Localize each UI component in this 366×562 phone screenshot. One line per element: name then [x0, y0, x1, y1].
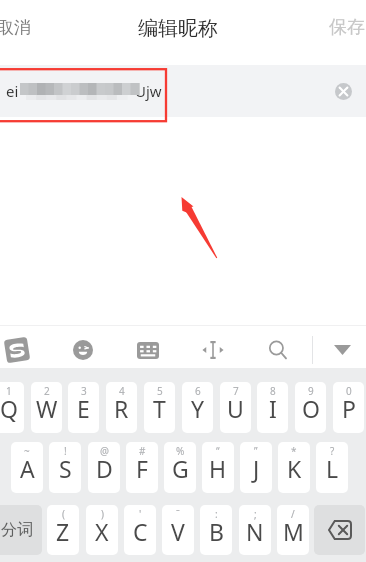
button[interactable]: 保存 — [317, 9, 366, 46]
button[interactable]: 6 — [182, 382, 213, 433]
button[interactable]: 键盘 — [131, 333, 165, 367]
staticText: ˉ — [176, 507, 180, 521]
button[interactable]: 0 — [333, 382, 364, 433]
button[interactable]: 收起键盘 — [325, 333, 359, 367]
staticText: 保存 — [329, 16, 365, 39]
button[interactable]: ' — [124, 505, 156, 555]
staticText: “ — [216, 444, 220, 458]
staticText: V — [171, 516, 185, 547]
staticText: ei — [6, 81, 19, 101]
staticText: K — [287, 453, 302, 484]
staticText: 4 — [119, 384, 125, 398]
staticText: C — [133, 516, 148, 547]
button[interactable]: “ — [202, 442, 234, 493]
staticText: ! — [64, 444, 67, 458]
staticText: D — [96, 453, 113, 484]
button[interactable]: 表情 — [66, 333, 100, 367]
staticText: H — [209, 453, 227, 484]
button[interactable]: 4 — [106, 382, 137, 433]
staticText: U — [227, 393, 244, 424]
button[interactable]: # — [126, 442, 158, 493]
button[interactable]: 分词 — [0, 505, 42, 555]
staticText: Y — [191, 393, 205, 424]
staticText: N — [246, 516, 264, 547]
button[interactable]: 清除 — [327, 75, 359, 107]
staticText: L — [326, 453, 339, 484]
button[interactable]: 搜狗输入法 — [0, 333, 34, 367]
staticText: * — [291, 444, 297, 458]
staticText: S — [59, 453, 72, 484]
staticText: ' — [139, 507, 142, 521]
button[interactable]: * — [278, 442, 310, 493]
button[interactable]: 9 — [295, 382, 326, 433]
staticText: ” — [254, 444, 258, 458]
button[interactable]: ; — [239, 505, 271, 555]
staticText: Q — [0, 393, 18, 424]
button[interactable]: 7 — [220, 382, 251, 433]
staticText: 6 — [195, 384, 201, 398]
staticText: 5 — [157, 384, 163, 398]
staticText: W — [36, 393, 58, 424]
staticText: ) — [101, 507, 104, 521]
staticText: 0 — [346, 384, 352, 398]
button[interactable]: ) — [86, 505, 118, 555]
staticText: / — [291, 507, 295, 521]
button[interactable]: 删除 — [314, 505, 365, 555]
button[interactable]: 3 — [68, 382, 99, 433]
staticText: 7 — [233, 384, 239, 398]
staticText: @ — [100, 444, 109, 458]
staticText: 3 — [81, 384, 87, 398]
button[interactable]: ˉ — [162, 505, 194, 555]
staticText: 1 — [6, 384, 12, 398]
staticText: O — [302, 393, 320, 424]
staticText: M — [283, 516, 304, 547]
staticText: B — [209, 516, 224, 547]
staticText: 2 — [44, 384, 50, 398]
button[interactable]: 取消 — [0, 10, 43, 45]
staticText: 取消 — [0, 17, 31, 38]
staticText: J — [253, 453, 260, 484]
staticText: ; — [254, 507, 257, 521]
staticText: # — [139, 444, 146, 458]
staticText: G — [172, 453, 189, 484]
button[interactable]: 5 — [144, 382, 175, 433]
staticText: I — [269, 393, 277, 424]
staticText: 9 — [308, 384, 314, 398]
button[interactable]: : — [200, 505, 232, 555]
button[interactable]: ! — [49, 442, 81, 493]
staticText: R — [114, 393, 129, 424]
button[interactable]: 8 — [257, 382, 288, 433]
staticText: A — [20, 453, 35, 484]
staticText: : — [215, 507, 218, 521]
staticText: 8 — [270, 384, 276, 398]
button[interactable]: 搜索 — [261, 333, 295, 367]
button[interactable]: % — [164, 442, 196, 493]
button[interactable]: ( — [47, 505, 79, 555]
staticText: Ujw — [135, 81, 162, 101]
button[interactable]: ~ — [11, 442, 43, 493]
staticText: ~ — [24, 444, 30, 458]
staticText: % — [176, 444, 185, 458]
staticText: F — [136, 453, 148, 484]
staticText: Z — [56, 516, 70, 547]
button[interactable]: 2 — [31, 382, 62, 433]
staticText: T — [153, 393, 166, 424]
staticText: P — [342, 393, 356, 424]
button[interactable]: ” — [240, 442, 272, 493]
button[interactable]: ? — [316, 442, 348, 493]
staticText: 分词 — [1, 520, 33, 540]
button[interactable]: / — [277, 505, 309, 555]
button[interactable]: 1 — [0, 382, 24, 433]
staticText: ( — [62, 507, 65, 521]
staticText: ? — [330, 444, 335, 458]
button[interactable]: 光标移动 — [196, 333, 230, 367]
staticText: X — [95, 516, 109, 547]
staticText: E — [77, 393, 90, 424]
button[interactable]: @ — [88, 442, 120, 493]
staticText: 编辑昵称 — [138, 16, 218, 41]
